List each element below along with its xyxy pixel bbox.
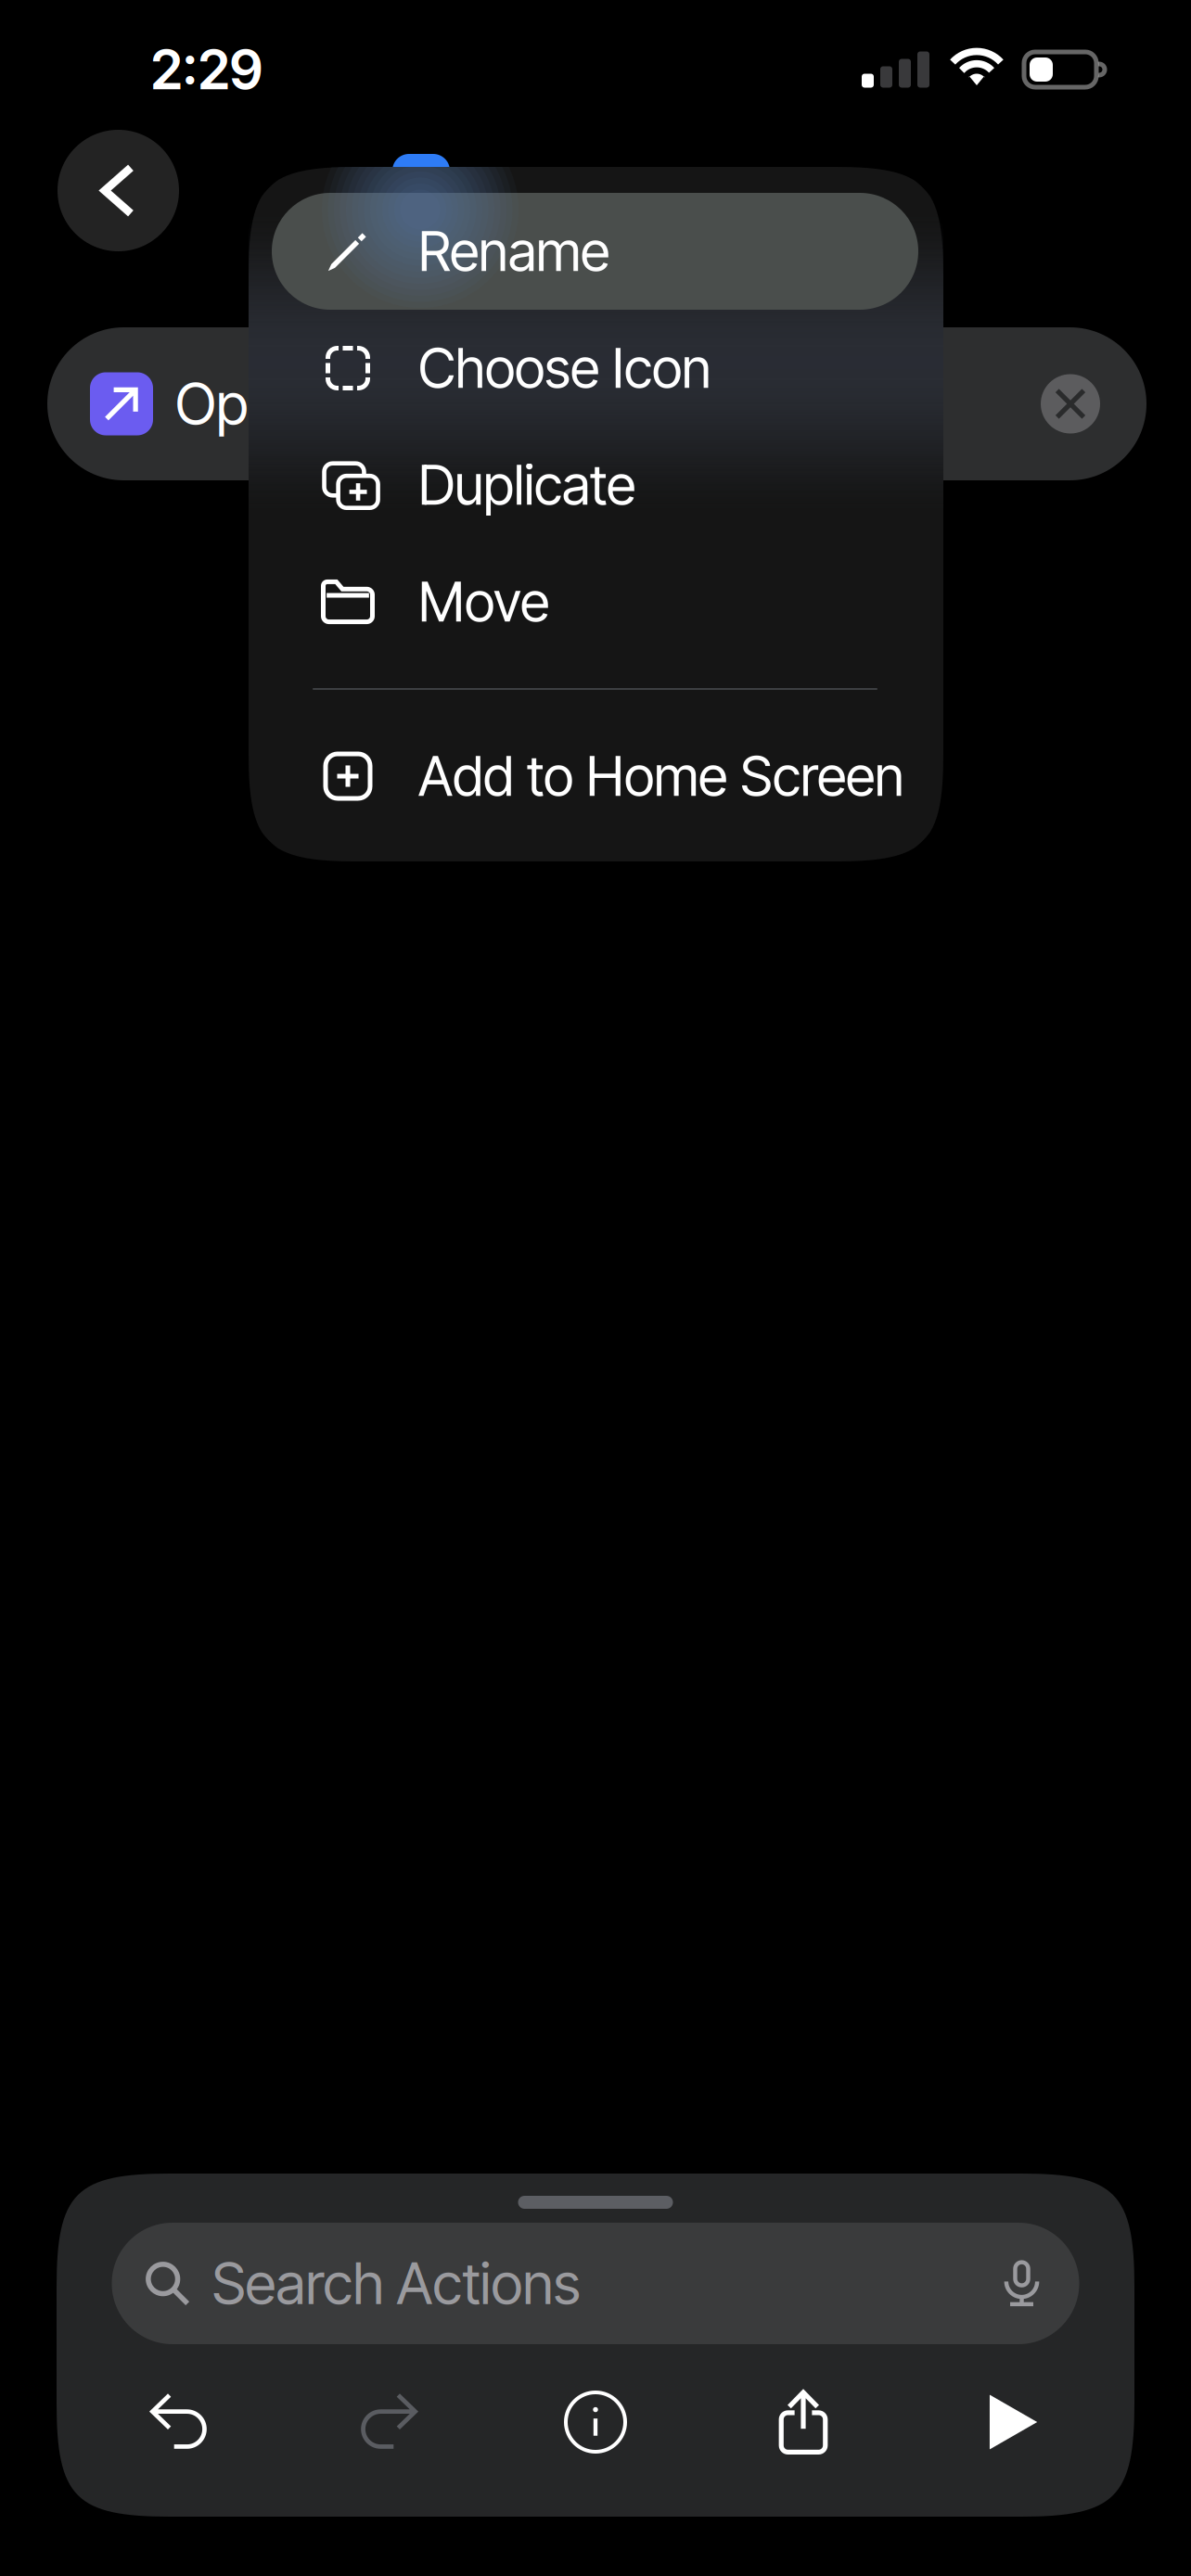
staticText: Duplicate <box>418 452 635 518</box>
staticText: 2:29 <box>151 37 263 102</box>
button[interactable]: Details <box>492 2366 699 2478</box>
staticText: Open App <box>175 369 421 438</box>
staticText: Add to Home Screen <box>418 743 904 809</box>
button[interactable]: Redo <box>284 2366 492 2478</box>
button[interactable]: Run <box>907 2366 1115 2478</box>
button[interactable]: Rename <box>272 193 918 310</box>
button[interactable]: Duplicate <box>272 427 918 543</box>
staticText: Choose Icon <box>418 335 711 401</box>
button[interactable]: Undo <box>76 2366 284 2478</box>
button[interactable]: Share <box>699 2366 907 2478</box>
staticText: Move <box>418 569 549 635</box>
button[interactable]: Move <box>272 543 918 660</box>
staticText: Rename <box>418 218 609 284</box>
staticText: Search Actions <box>212 2249 580 2318</box>
button[interactable]: Add to Home Screen <box>272 718 918 835</box>
button[interactable]: Choose Icon <box>272 310 918 427</box>
button[interactable]: Back <box>58 130 179 251</box>
